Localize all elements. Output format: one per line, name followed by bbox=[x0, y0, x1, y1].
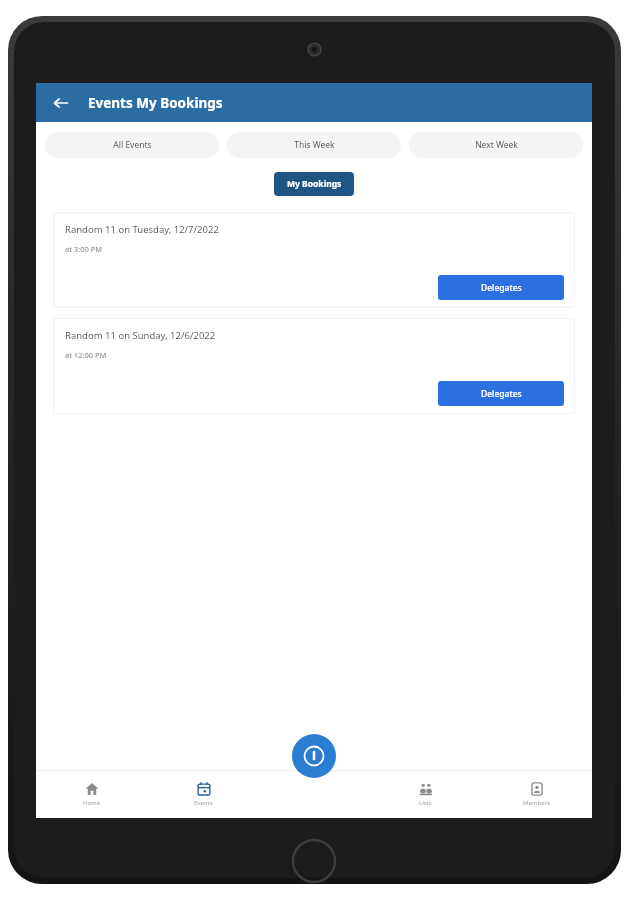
staticText: Events My Bookings bbox=[88, 94, 223, 112]
staticText: Lists bbox=[419, 799, 432, 807]
staticText: Members bbox=[523, 799, 550, 807]
button[interactable]: Lists bbox=[370, 771, 481, 818]
staticText: Home bbox=[83, 799, 101, 807]
staticText: at 3:00 PM bbox=[65, 244, 103, 254]
button[interactable]: Info bbox=[292, 734, 336, 778]
button[interactable]: Random 11 on Tuesday, 12/7/2022 bbox=[53, 212, 575, 308]
button[interactable]: Delegates bbox=[438, 275, 564, 300]
button[interactable]: All Events bbox=[45, 132, 219, 158]
button[interactable]: My Bookings bbox=[274, 172, 354, 196]
button[interactable]: Home bbox=[36, 771, 148, 818]
staticText: Random 11 on Sunday, 12/6/2022 bbox=[65, 329, 216, 342]
button[interactable]: This Week bbox=[227, 132, 401, 158]
staticText: Next Week bbox=[475, 139, 518, 151]
staticText: Delegates bbox=[481, 282, 522, 294]
staticText: This Week bbox=[294, 139, 335, 151]
button[interactable]: Next Week bbox=[409, 132, 583, 158]
button[interactable]: Delegates bbox=[438, 381, 564, 406]
staticText: All Events bbox=[113, 139, 152, 151]
staticText: at 12:00 PM bbox=[65, 350, 107, 360]
staticText: My Bookings bbox=[287, 178, 342, 190]
button[interactable]: Back bbox=[44, 86, 78, 120]
staticText: Random 11 on Tuesday, 12/7/2022 bbox=[65, 223, 219, 236]
staticText: Delegates bbox=[481, 388, 522, 400]
button[interactable]: Random 11 on Sunday, 12/6/2022 bbox=[53, 318, 575, 414]
staticText: Events bbox=[194, 799, 213, 807]
button[interactable]: Events bbox=[148, 771, 259, 818]
button[interactable]: Members bbox=[481, 771, 592, 818]
